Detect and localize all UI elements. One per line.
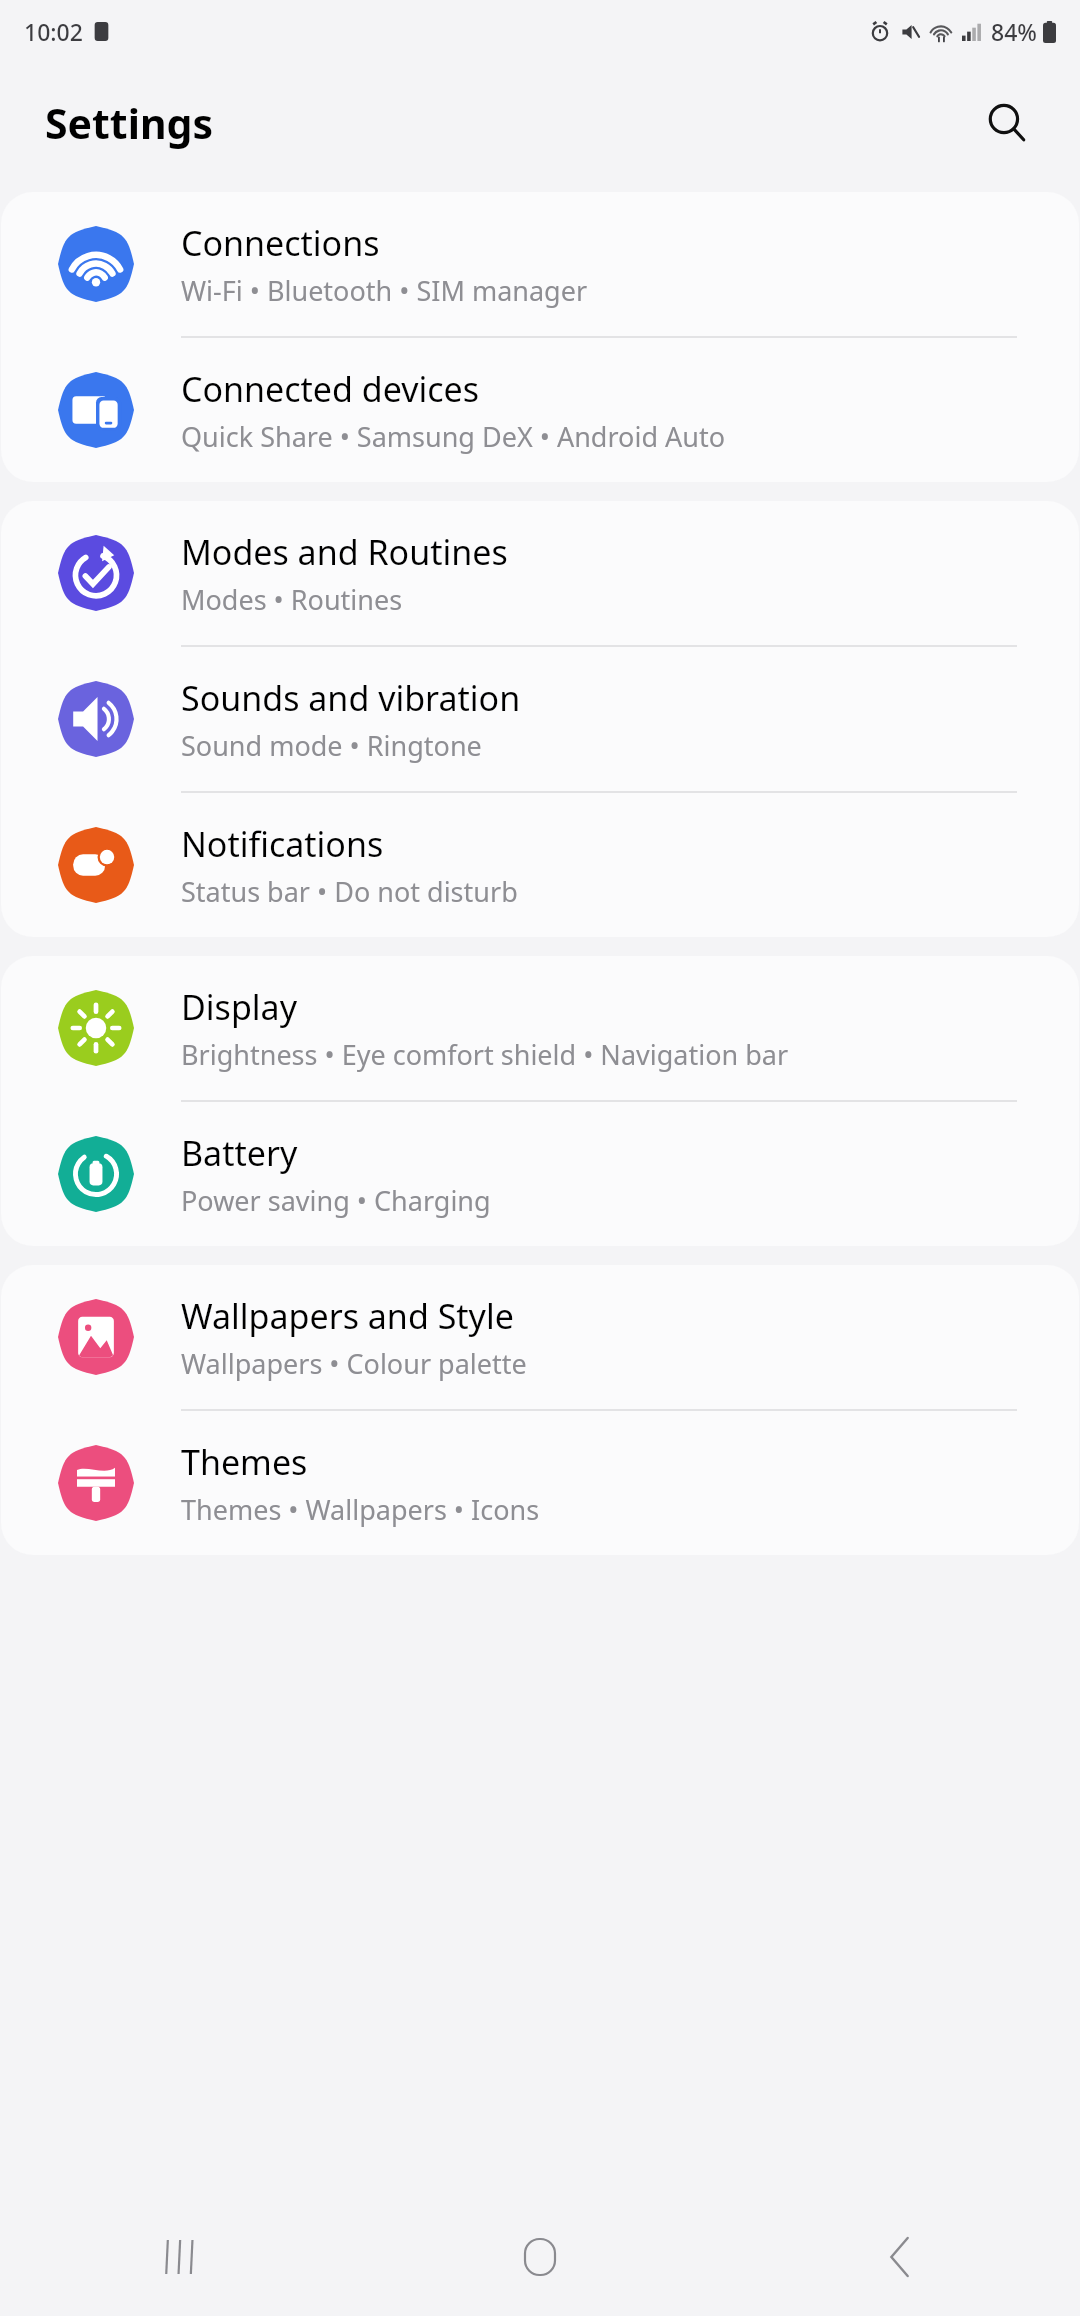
button[interactable]: Search [976, 92, 1038, 154]
staticText: Display [181, 984, 297, 1030]
button[interactable]: Connections [1, 192, 1079, 336]
button[interactable]: Display [1, 956, 1079, 1100]
staticText: Battery [181, 1130, 298, 1176]
button[interactable]: Recents [0, 2198, 360, 2316]
staticText: Modes • Routines [181, 581, 403, 618]
button[interactable]: Themes [1, 1411, 1079, 1555]
staticText: Quick Share • Samsung DeX • Android Auto [181, 418, 726, 455]
staticText: Power saving • Charging [181, 1182, 491, 1219]
staticText: Brightness • Eye comfort shield • Naviga… [181, 1036, 789, 1073]
button[interactable]: Battery [1, 1102, 1079, 1246]
button[interactable]: Home [360, 2198, 720, 2316]
staticText: Sound mode • Ringtone [181, 727, 482, 764]
staticText: Wallpapers and Style [181, 1293, 514, 1339]
staticText: Wi-Fi • Bluetooth • SIM manager [181, 272, 588, 309]
staticText: Connected devices [181, 366, 480, 412]
staticText: Themes [181, 1439, 308, 1485]
staticText: Settings [45, 95, 214, 151]
button[interactable]: Notifications [1, 793, 1079, 937]
staticText: Modes and Routines [181, 529, 508, 575]
staticText: Status bar • Do not disturb [181, 873, 518, 910]
button[interactable]: Wallpapers and Style [1, 1265, 1079, 1409]
button[interactable]: Sounds and vibration [1, 647, 1079, 791]
staticText: Wallpapers • Colour palette [181, 1345, 527, 1382]
staticText: Notifications [181, 821, 384, 867]
staticText: Themes • Wallpapers • Icons [181, 1491, 540, 1528]
staticText: 84% [991, 16, 1037, 47]
staticText: Sounds and vibration [181, 675, 521, 721]
button[interactable]: Connected devices [1, 338, 1079, 482]
button[interactable]: Modes and Routines [1, 501, 1079, 645]
staticText: Connections [181, 220, 380, 266]
staticText: 10:02 [24, 16, 83, 47]
button[interactable]: Back [720, 2198, 1080, 2316]
